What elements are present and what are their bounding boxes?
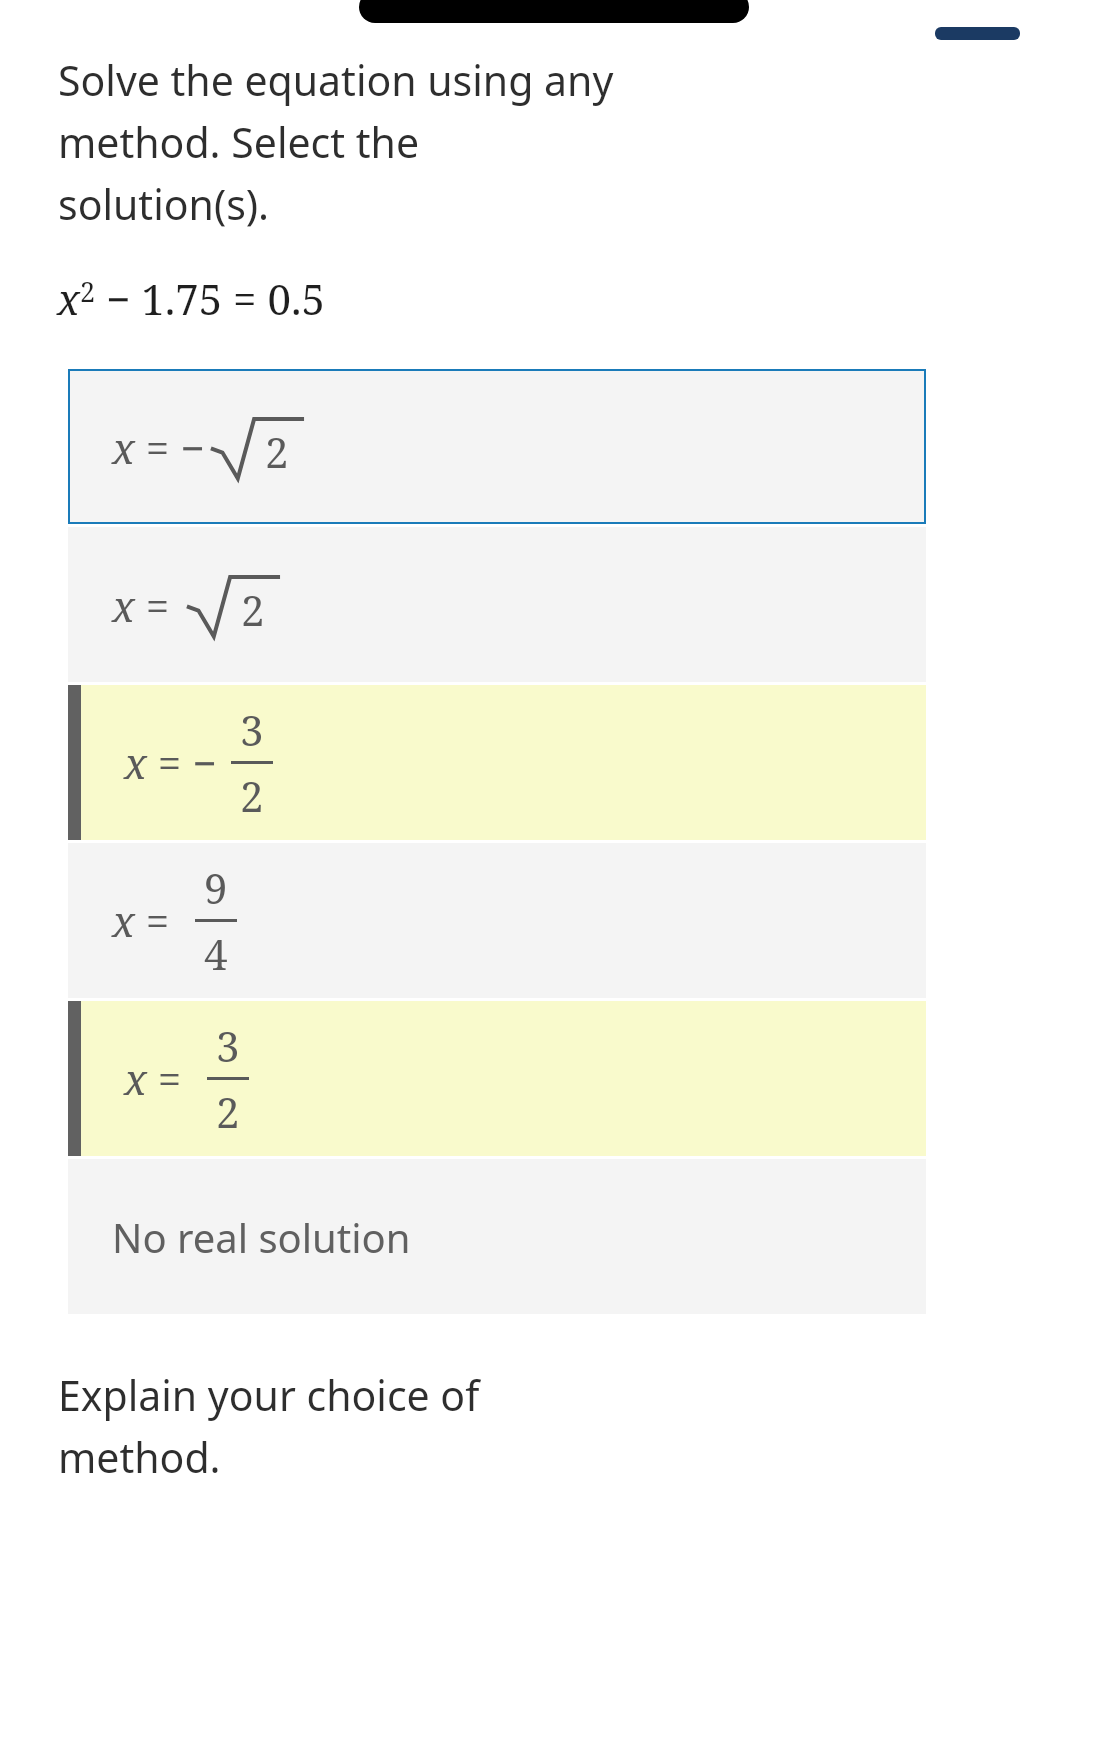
button[interactable]: No real solution	[68, 1159, 926, 1314]
staticText: 2	[241, 581, 265, 638]
staticText: 9	[204, 859, 228, 916]
staticText: x =	[112, 892, 181, 949]
staticText: 2	[265, 423, 289, 480]
button[interactable]: x =	[68, 527, 926, 682]
staticText: Explain your choice of method.	[58, 1367, 480, 1485]
staticText: x2 − 1.75 = 0.5	[57, 270, 325, 327]
staticText: No real solution	[112, 1210, 411, 1264]
staticText: 4	[204, 925, 228, 982]
staticText: x = −	[124, 734, 217, 791]
staticText: 2	[216, 1083, 240, 1140]
staticText: 3	[216, 1017, 240, 1074]
staticText: x =	[112, 577, 181, 634]
staticText: x = −	[112, 419, 205, 476]
button[interactable]: x =	[68, 843, 926, 998]
staticText: 3	[240, 701, 264, 758]
staticText: 2	[240, 767, 264, 824]
button[interactable]: x =	[68, 1001, 926, 1156]
staticText: Solve the equation using any method. Sel…	[58, 52, 614, 232]
button[interactable]: x = −	[68, 685, 926, 840]
button[interactable]: x = −	[68, 369, 926, 524]
staticText: x =	[124, 1050, 193, 1107]
